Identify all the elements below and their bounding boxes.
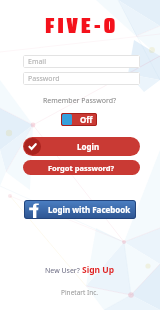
staticText: Login with Facebook: [48, 204, 131, 215]
staticText: FIVE-O: [46, 9, 120, 43]
button[interactable]: Login with Facebook: [24, 200, 136, 219]
button[interactable]: Sign Up: [82, 264, 115, 276]
button[interactable]: Forgot password?: [23, 160, 140, 175]
staticText: FIVE-O: [45, 9, 119, 43]
staticText: Email: [28, 57, 46, 67]
button[interactable]: Remember password toggle: [61, 113, 97, 126]
button[interactable]: Password: [23, 72, 140, 85]
staticText: Password: [28, 74, 60, 84]
staticText: Forgot password?: [48, 163, 115, 173]
staticText: Login: [77, 141, 100, 152]
button[interactable]: Login: [23, 137, 140, 156]
staticText: Remember Password?: [43, 96, 117, 106]
button[interactable]: Email: [23, 55, 140, 68]
staticText: New User?: [45, 266, 82, 276]
staticText: Pinetart Inc.: [61, 288, 99, 297]
staticText: Off: [80, 114, 93, 125]
